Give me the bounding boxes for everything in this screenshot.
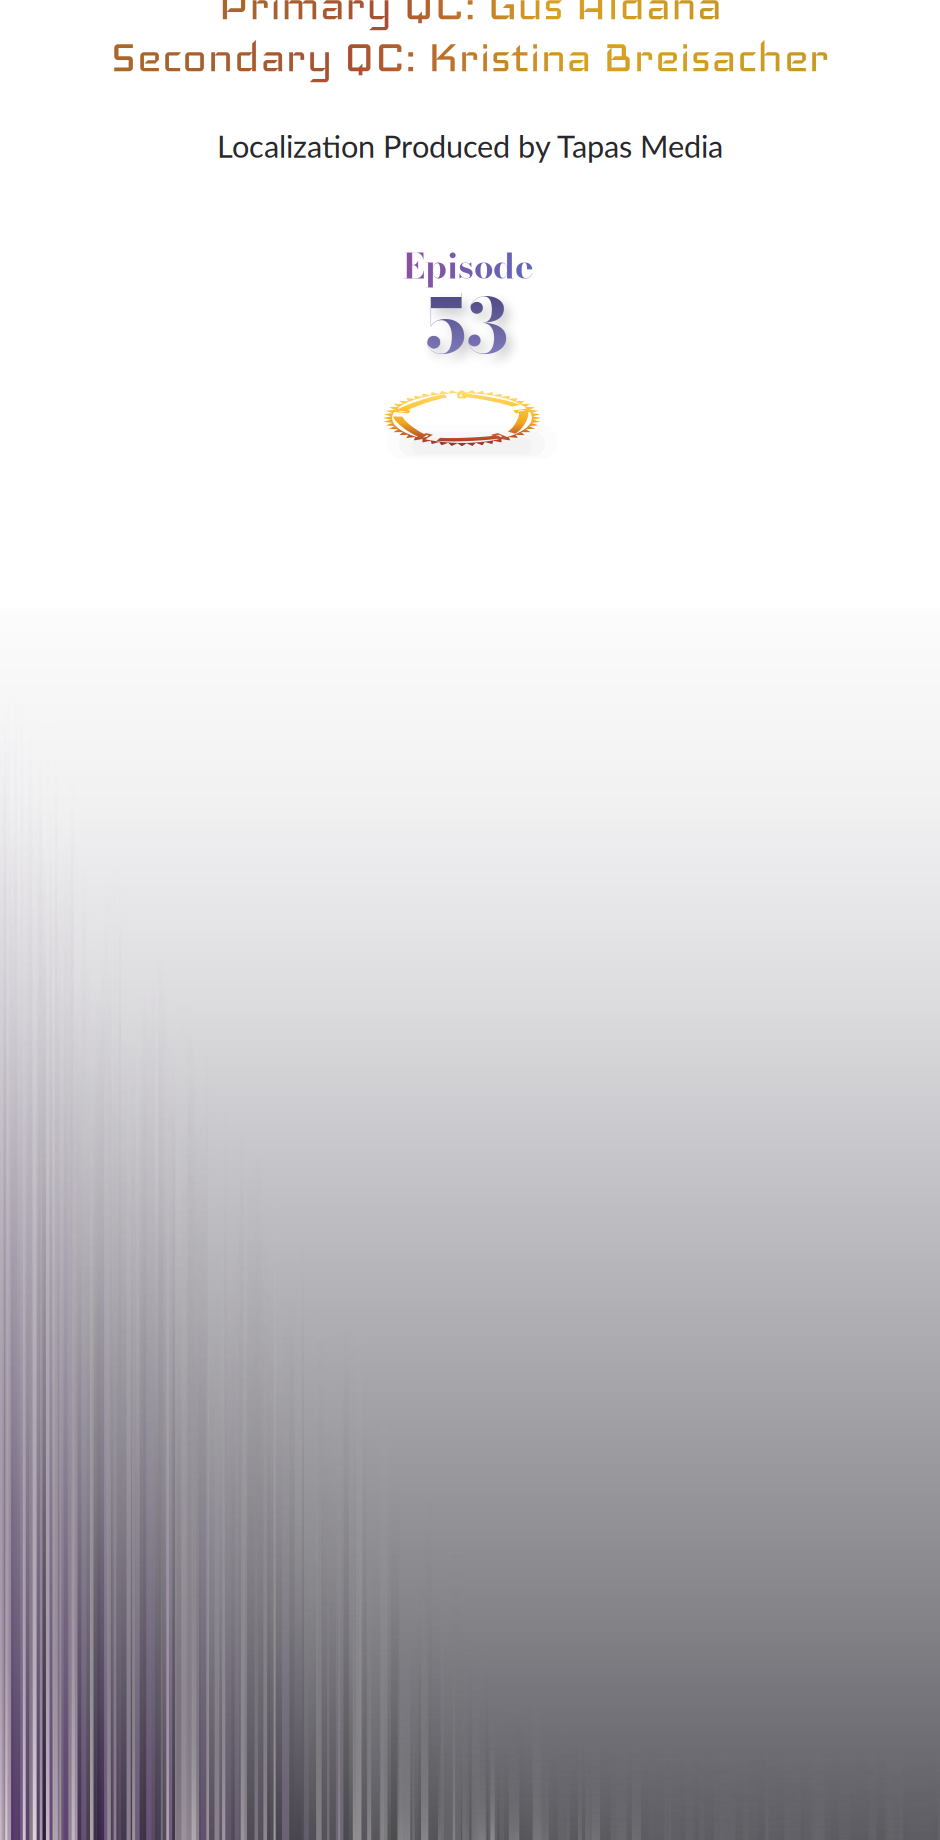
staticText: Localization Produced by Tapas Media: [217, 128, 723, 164]
staticText: Primary QC: Gus Aldana: [218, 0, 722, 31]
staticText: Secondary QC: Kristina Breisacher: [110, 31, 829, 83]
staticText: Episode: [403, 240, 533, 292]
staticText: 53: [426, 269, 509, 383]
